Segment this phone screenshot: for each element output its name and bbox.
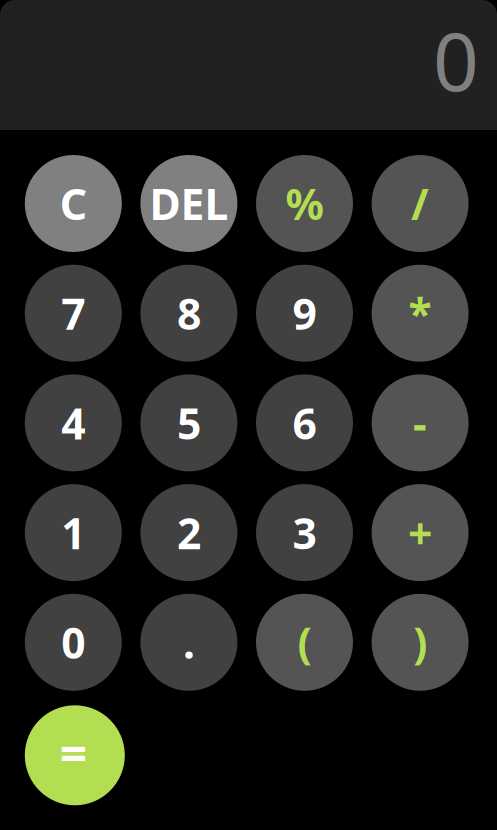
button[interactable]: / [372,155,469,252]
button[interactable]: ( [256,594,353,691]
staticText: * [409,285,432,342]
staticText: 8 [177,285,201,342]
button[interactable]: % [256,155,353,252]
button[interactable]: 5 [140,374,237,471]
button[interactable]: 7 [25,265,122,362]
staticText: 2 [177,504,201,561]
staticText: 5 [177,395,201,451]
button[interactable]: 9 [256,265,353,362]
staticText: . [183,614,195,671]
staticText: 4 [61,395,85,451]
staticText: DEL [149,175,228,232]
staticText: 0 [61,614,85,671]
button[interactable]: 6 [256,374,353,471]
button[interactable]: ) [372,594,469,691]
button[interactable]: * [372,265,469,362]
staticText: C [60,175,87,232]
button[interactable]: - [372,374,469,471]
button[interactable]: + [372,484,469,581]
staticText: ( [297,614,311,671]
button[interactable]: = [25,705,125,805]
staticText: / [411,175,429,232]
button[interactable]: . [140,594,237,691]
button[interactable]: 0 [25,594,122,691]
staticText: 0 [433,7,479,113]
button[interactable]: 3 [256,484,353,581]
staticText: 1 [61,504,85,561]
staticText: % [285,175,323,232]
button[interactable]: 8 [140,265,237,362]
button[interactable]: 1 [25,484,122,581]
button[interactable]: 2 [140,484,237,581]
button[interactable]: DEL [140,155,237,252]
staticText: ) [413,614,427,671]
staticText: 6 [292,395,316,451]
button[interactable]: 4 [25,374,122,471]
staticText: + [408,504,432,561]
staticText: = [60,720,87,784]
button[interactable]: C [25,155,122,252]
staticText: 3 [292,504,316,561]
staticText: 7 [61,285,85,342]
staticText: - [413,395,427,451]
staticText: 9 [292,285,316,342]
